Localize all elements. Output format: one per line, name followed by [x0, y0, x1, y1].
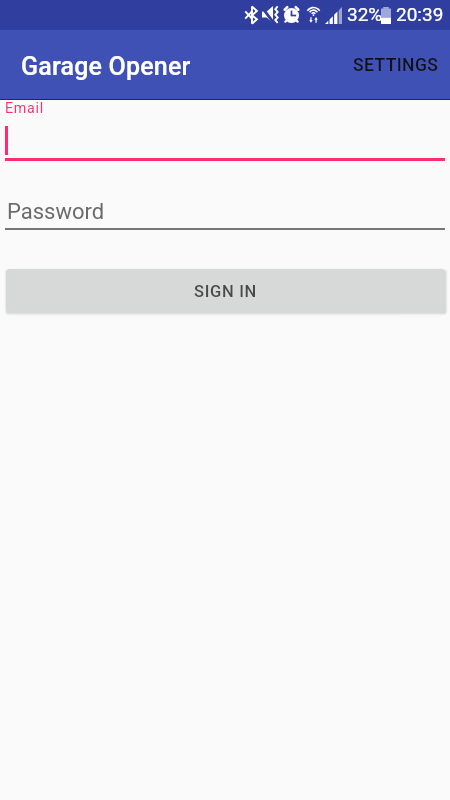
staticText: SIGN IN: [194, 282, 257, 301]
other: Battery 32 percent: [381, 7, 391, 24]
other: Sound muted, vibrate: [262, 6, 280, 23]
staticText: Garage Opener: [21, 52, 191, 81]
staticText: 20:39: [396, 3, 444, 25]
other: Mobile signal: [325, 7, 342, 24]
other: Wi-Fi connected: [306, 6, 321, 23]
staticText: Password: [7, 199, 105, 225]
button[interactable]: SIGN IN: [6, 269, 445, 313]
staticText: Email: [5, 100, 44, 117]
staticText: 32%: [347, 3, 383, 25]
button[interactable]: Email: [0, 100, 450, 161]
staticText: SETTINGS: [353, 55, 439, 76]
other: Alarm set: [283, 6, 300, 23]
other: Bluetooth on: [245, 6, 257, 24]
button[interactable]: Password: [0, 192, 450, 230]
button[interactable]: SETTINGS: [342, 41, 450, 89]
